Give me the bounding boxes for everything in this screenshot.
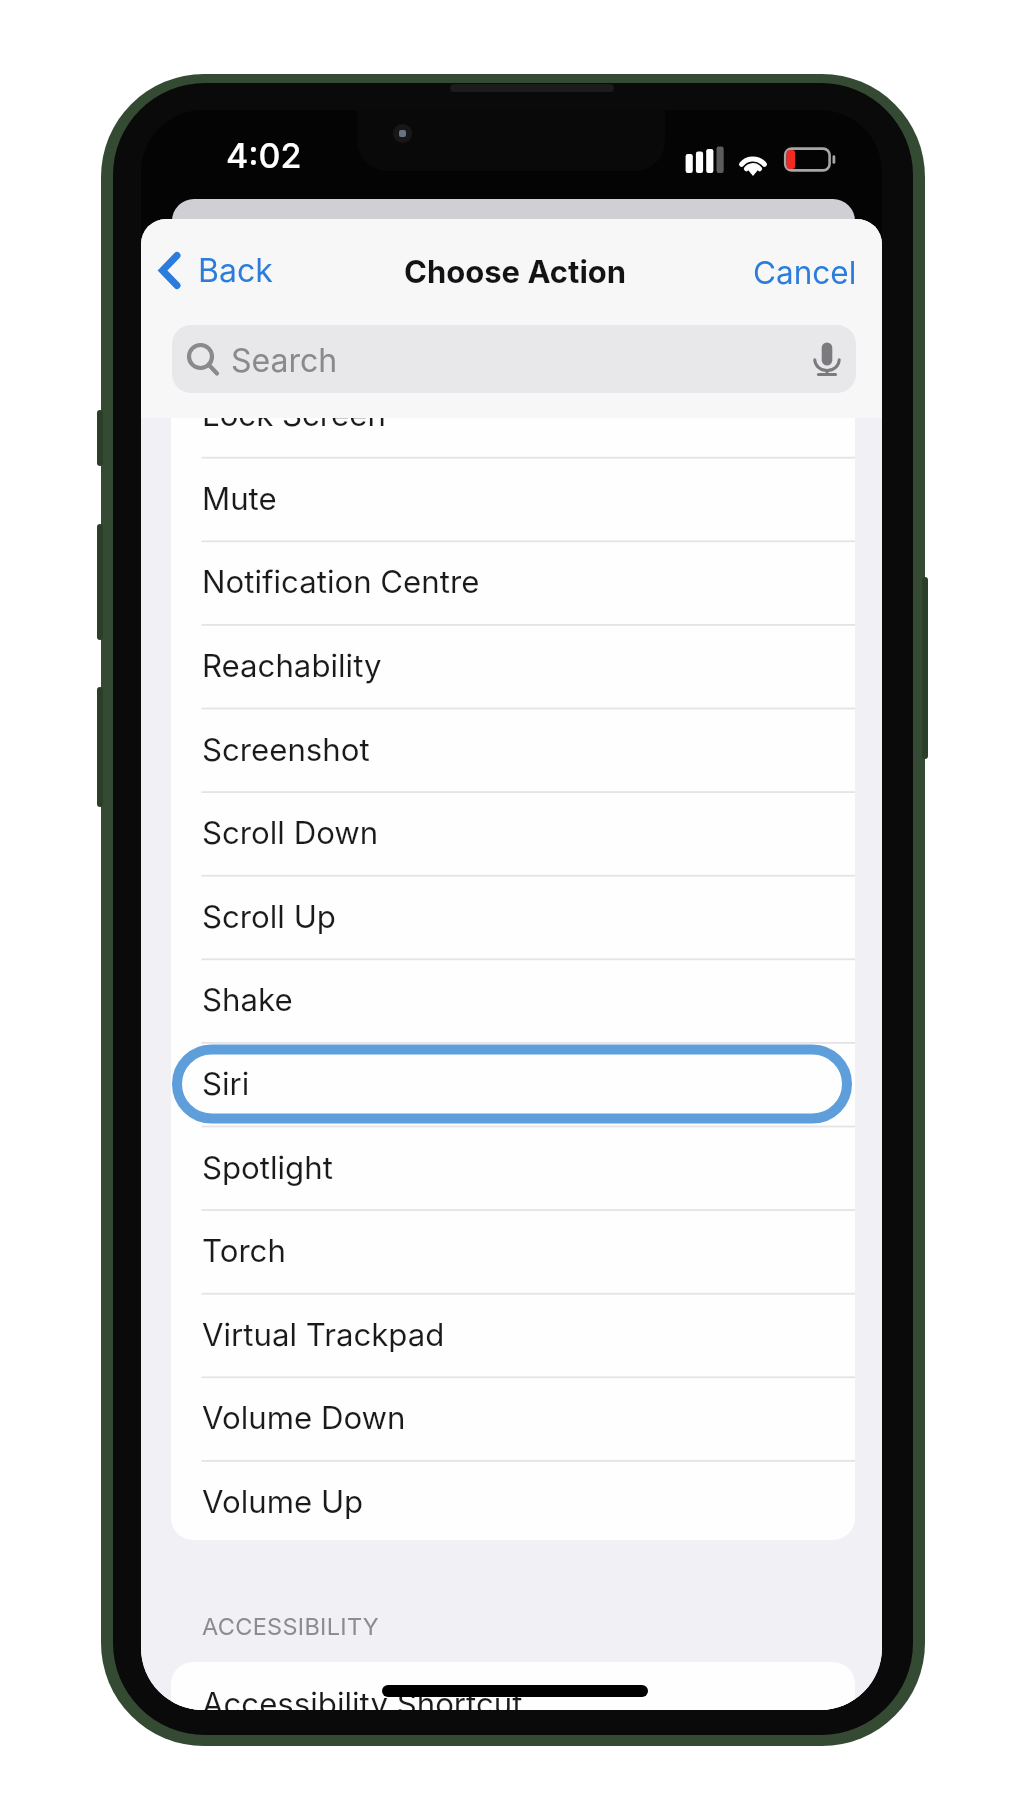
- staticText: 4:02: [226, 135, 302, 176]
- button[interactable]: Notification Centre: [171, 540, 855, 624]
- other: Voice search: [813, 341, 841, 377]
- button[interactable]: Volume Up: [171, 1460, 855, 1544]
- button[interactable]: Cancel: [747, 243, 863, 301]
- staticText: Back: [198, 251, 273, 290]
- staticText: Choose Action: [404, 253, 627, 291]
- staticText: Lock Screen: [202, 396, 386, 434]
- staticText: Virtual Trackpad: [202, 1316, 445, 1354]
- button[interactable]: Siri: [171, 1042, 855, 1126]
- button[interactable]: Back: [150, 245, 282, 296]
- staticText: Scroll Up: [202, 898, 336, 936]
- staticText: Siri: [202, 1065, 250, 1103]
- button[interactable]: Screenshot: [171, 708, 855, 792]
- button[interactable]: Mute: [171, 457, 855, 541]
- staticText: Accessibility Shortcut: [202, 1685, 523, 1710]
- staticText: Volume Up: [202, 1483, 364, 1521]
- staticText: Shake: [202, 981, 293, 1019]
- staticText: Torch: [202, 1232, 286, 1270]
- button[interactable]: Virtual Trackpad: [171, 1293, 855, 1377]
- button[interactable]: Torch: [171, 1209, 855, 1293]
- staticText: Reachability: [202, 647, 382, 685]
- button[interactable]: Lock Screen: [171, 373, 855, 457]
- button[interactable]: Search: [172, 325, 856, 393]
- button[interactable]: Accessibility Shortcut: [171, 1662, 855, 1710]
- staticText: Scroll Down: [202, 814, 379, 852]
- staticText: ACCESSIBILITY: [202, 1612, 380, 1640]
- button[interactable]: Spotlight: [171, 1126, 855, 1210]
- button[interactable]: Volume Down: [171, 1376, 855, 1460]
- button[interactable]: Scroll Down: [171, 791, 855, 875]
- button[interactable]: Reachability: [171, 624, 855, 708]
- button[interactable]: Scroll Up: [171, 875, 855, 959]
- staticText: Mute: [202, 480, 277, 518]
- button[interactable]: Shake: [171, 958, 855, 1042]
- staticText: Volume Down: [202, 1399, 406, 1437]
- staticText: Screenshot: [202, 731, 370, 769]
- staticText: Spotlight: [202, 1149, 333, 1187]
- staticText: Search: [231, 341, 338, 380]
- staticText: Notification Centre: [202, 563, 480, 601]
